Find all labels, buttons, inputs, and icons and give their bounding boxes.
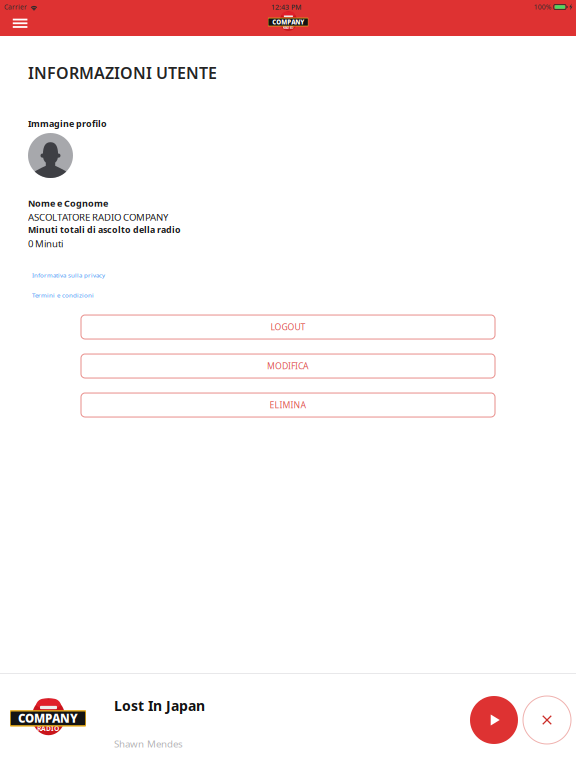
staticText: COMPANY [18, 710, 78, 726]
button[interactable]: Menu [0, 12, 36, 34]
button[interactable]: Termini e condizioni [32, 291, 94, 299]
staticText: ELIMINA [269, 399, 306, 411]
staticText: MODIFICA [267, 360, 309, 372]
staticText: RADIO [37, 724, 59, 733]
button[interactable]: Close [523, 696, 571, 744]
staticText: 100% [534, 2, 552, 12]
staticText: INFORMAZIONI UTENTE [28, 62, 217, 84]
button[interactable]: Informativa sulla privacy [32, 271, 105, 279]
staticText: Minuti totali di ascolto della radio [28, 223, 181, 235]
staticText: 0 Minuti [28, 237, 63, 250]
staticText: Lost In Japan [114, 696, 205, 715]
staticText: RADIO [283, 25, 294, 30]
staticText: Nome e Cognome [28, 197, 108, 209]
staticText: Immagine profilo [28, 117, 107, 130]
staticText: 12:43 PM [271, 2, 301, 12]
staticText: ASCOLTATORE RADIO COMPANY [28, 210, 168, 224]
staticText: Informativa sulla privacy [32, 271, 105, 279]
staticText: Termini e condizioni [32, 291, 94, 299]
staticText: LOGOUT [270, 321, 305, 333]
button[interactable]: Play [470, 696, 518, 744]
staticText: Shawn Mendes [114, 737, 183, 750]
button[interactable]: ELIMINA [81, 393, 495, 417]
button[interactable]: MODIFICA [81, 354, 495, 378]
staticText: COMPANY [272, 18, 304, 26]
button[interactable]: LOGOUT [81, 315, 495, 339]
staticText: Carrier [4, 2, 27, 12]
